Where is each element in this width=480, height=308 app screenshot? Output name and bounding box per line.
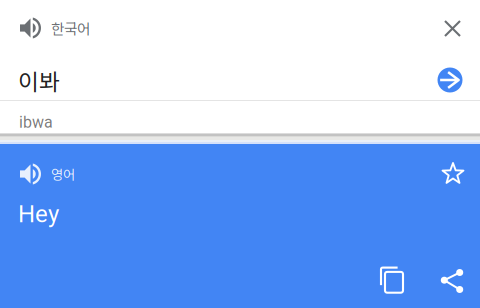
button[interactable]: Close: [430, 6, 474, 50]
staticText: 이봐: [18, 64, 60, 97]
button[interactable]: 영어: [0, 154, 240, 194]
staticText: Hey: [18, 200, 59, 228]
staticText: 한국어: [51, 17, 90, 39]
button[interactable]: Share: [430, 259, 474, 303]
button[interactable]: Copy: [370, 258, 414, 302]
staticText: 영어: [51, 164, 75, 184]
button[interactable]: Translate: [428, 58, 472, 102]
staticText: ibwa: [19, 113, 53, 132]
button[interactable]: Save to phrasebook: [431, 151, 475, 195]
button[interactable]: 한국어: [0, 8, 260, 48]
